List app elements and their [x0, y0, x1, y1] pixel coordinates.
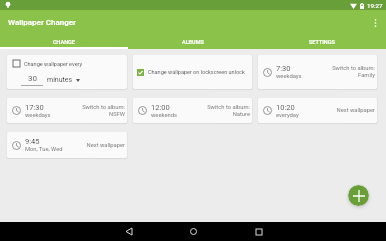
staticText: Next wallpaper: [86, 142, 125, 149]
staticText: Family: [358, 72, 375, 79]
staticText: SETTINGS: [309, 39, 335, 45]
staticText: weekdays: [25, 112, 51, 119]
button[interactable]: CHANGE: [0, 35, 128, 49]
button[interactable]: 10:20: [258, 98, 377, 123]
staticText: weekends: [151, 112, 177, 119]
staticText: minutes: [47, 76, 73, 84]
staticText: Wallpaper Changer: [8, 18, 76, 27]
button[interactable]: Add schedule: [348, 185, 369, 206]
staticText: NSFW: [109, 111, 125, 118]
staticText: weekdays: [276, 73, 302, 80]
staticText: everyday: [276, 112, 299, 119]
staticText: 7:30: [276, 64, 291, 73]
staticText: 19:27: [367, 2, 383, 9]
button[interactable]: 17:30: [7, 98, 127, 123]
staticText: ALBUMS: [182, 39, 204, 45]
button[interactable]: Back: [96, 222, 161, 241]
staticText: Change wallpaper on lockscreen unlock: [148, 69, 245, 75]
staticText: 17:30: [25, 103, 44, 112]
button[interactable]: 9:45: [7, 132, 127, 158]
button[interactable]: SETTINGS: [257, 35, 386, 49]
staticText: 12:00: [151, 103, 170, 112]
staticText: Next wallpaper: [336, 107, 375, 114]
staticText: Mon, Tue, Wed: [25, 146, 63, 153]
button[interactable]: More options: [364, 12, 386, 34]
staticText: Change wallpaper every: [24, 61, 83, 67]
staticText: Switch to album:: [82, 104, 125, 111]
button[interactable]: Change wallpaper on lockscreen unlock: [133, 55, 252, 89]
staticText: 9:45: [25, 137, 40, 146]
staticText: Switch to album:: [332, 65, 375, 72]
staticText: 30: [28, 74, 37, 83]
button[interactable]: Change wallpaper every: [7, 55, 127, 89]
button[interactable]: 12:00: [133, 98, 252, 123]
button[interactable]: Home: [161, 222, 226, 241]
staticText: 10:20: [276, 103, 295, 112]
button[interactable]: 7:30: [258, 55, 377, 89]
staticText: Switch to album:: [207, 104, 250, 111]
button[interactable]: Recent apps: [226, 222, 291, 241]
staticText: CHANGE: [53, 39, 75, 45]
button[interactable]: ALBUMS: [128, 35, 257, 49]
staticText: Nature: [232, 111, 250, 118]
